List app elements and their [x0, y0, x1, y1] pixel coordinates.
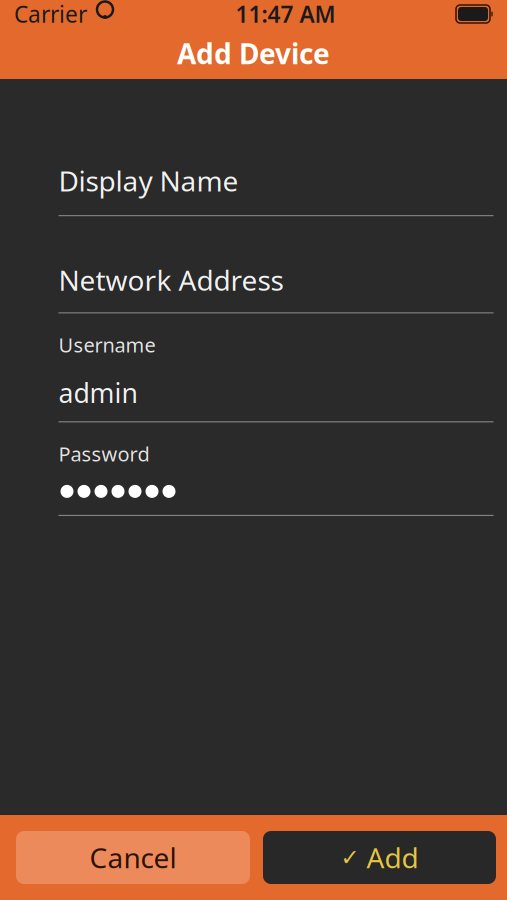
staticText: Add Device	[177, 35, 330, 72]
button[interactable]: ✓	[263, 831, 496, 884]
staticText: Network Address	[58, 261, 283, 298]
staticText: admin	[58, 375, 137, 410]
button[interactable]: Cancel	[16, 831, 250, 884]
staticText: 11:47 AM	[235, 0, 335, 29]
staticText: ✓	[340, 845, 359, 870]
staticText: Password	[58, 440, 149, 467]
staticText: Cancel	[89, 839, 176, 876]
staticText: Display Name	[58, 162, 238, 199]
staticText: Carrier	[14, 0, 87, 29]
staticText: Username	[58, 331, 155, 358]
staticText: Add	[366, 839, 418, 876]
